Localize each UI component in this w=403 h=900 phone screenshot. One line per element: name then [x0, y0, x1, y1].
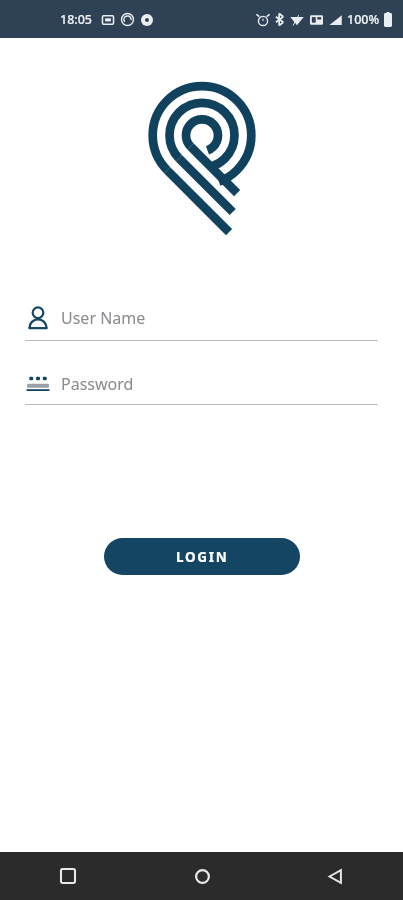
button[interactable]: Back: [314, 855, 356, 897]
staticText: User Name: [61, 307, 146, 329]
staticText: 100%: [347, 11, 380, 28]
button[interactable]: Password: [0, 373, 403, 405]
staticText: Password: [61, 373, 134, 395]
button[interactable]: Recent apps: [47, 855, 89, 897]
button[interactable]: User Name: [0, 305, 403, 341]
staticText: LOGIN: [176, 548, 229, 566]
staticText: 18:05: [60, 11, 93, 28]
button[interactable]: LOGIN: [104, 538, 300, 575]
button[interactable]: Home: [181, 855, 223, 897]
